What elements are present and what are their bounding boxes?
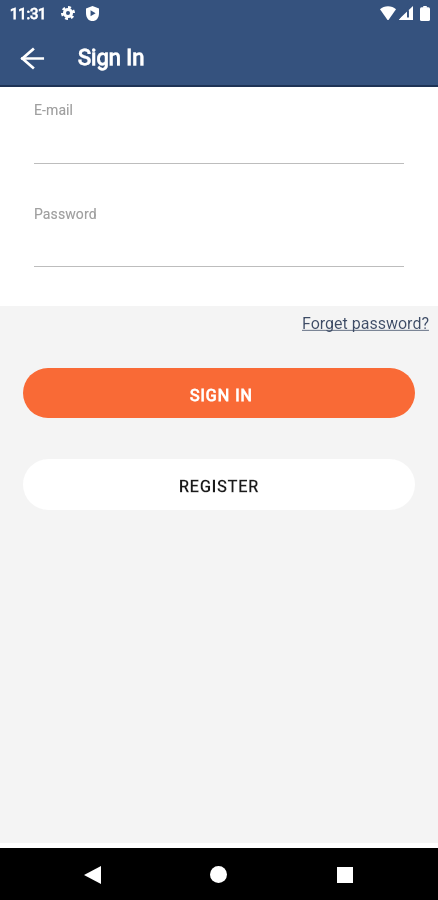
button[interactable]: Password field — [34, 199, 404, 267]
button[interactable]: SIGN IN — [23, 368, 415, 418]
button[interactable]: Back — [12, 38, 52, 78]
button[interactable]: REGISTER — [23, 459, 415, 510]
staticText: E-mail — [34, 102, 74, 118]
button[interactable]: Forget password? — [298, 311, 433, 336]
staticText: 11:31 — [10, 5, 47, 23]
button[interactable]: Back — [70, 852, 115, 897]
staticText: Forget password? — [302, 314, 429, 333]
staticText: REGISTER — [179, 477, 260, 496]
button[interactable]: Recents — [322, 852, 367, 897]
staticText: Password — [34, 206, 97, 222]
staticText: Sign In — [78, 45, 145, 71]
button[interactable]: Home — [196, 852, 241, 897]
staticText: SIGN IN — [190, 386, 253, 405]
button[interactable]: E-mail field — [34, 95, 404, 164]
